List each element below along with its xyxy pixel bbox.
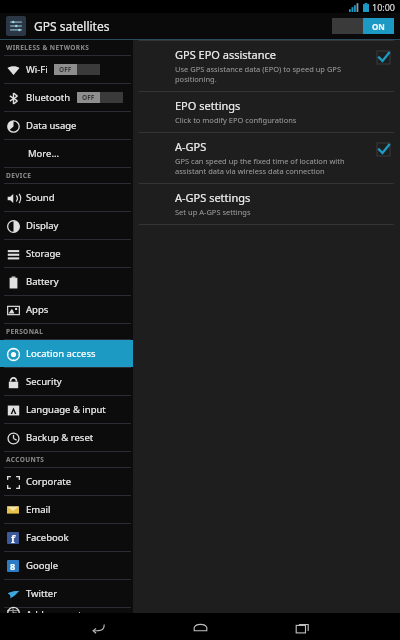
staticText: 10:00	[372, 1, 396, 13]
staticText: OFF	[59, 65, 72, 74]
staticText: Location access	[26, 347, 96, 360]
button[interactable]: Wi-Fi toggle, off	[54, 64, 100, 75]
staticText: ON	[372, 21, 385, 32]
staticText: OFF	[82, 93, 95, 102]
staticText: Data usage	[26, 119, 77, 132]
button[interactable]: Home	[183, 614, 217, 640]
staticText: Sound	[26, 191, 55, 204]
button[interactable]: Email	[0, 496, 133, 523]
button[interactable]: Location access	[0, 340, 133, 367]
staticText: Click to modify EPO configurations	[175, 115, 297, 125]
button[interactable]: GPS EPO assistance	[133, 41, 400, 91]
button[interactable]: Apps	[0, 296, 133, 323]
button[interactable]: Display	[0, 212, 133, 239]
staticText: Bluetooth	[26, 91, 71, 104]
staticText: Storage	[26, 247, 61, 260]
button[interactable]: Language & input	[0, 396, 133, 423]
button[interactable]: Wi-Fi	[0, 56, 133, 83]
button[interactable]: GPS EPO assistance checkbox	[376, 50, 390, 64]
staticText: PERSONAL	[6, 327, 44, 336]
staticText: Google	[26, 559, 59, 572]
staticText: Security	[26, 375, 62, 388]
staticText: DEVICE	[6, 171, 32, 180]
staticText: GPS can speed up the fixed time of locat…	[175, 156, 368, 176]
button[interactable]: Bluetooth	[0, 84, 133, 111]
staticText: Use GPS assistance data (EPO) to speed u…	[175, 64, 368, 84]
button[interactable]: A-GPS checkbox	[376, 142, 390, 156]
button[interactable]: A-GPS settings	[133, 184, 400, 224]
staticText: GPS EPO assistance	[175, 47, 277, 62]
staticText: Add account	[26, 608, 82, 613]
staticText: f	[11, 532, 16, 544]
button[interactable]: Sound	[0, 184, 133, 211]
button[interactable]: Twitter	[0, 580, 133, 607]
staticText: Email	[26, 503, 51, 516]
button[interactable]: Bluetooth toggle, off	[77, 92, 123, 103]
button[interactable]: Add account	[0, 608, 133, 613]
button[interactable]: Corporate	[0, 468, 133, 495]
staticText: Set up A-GPS settings	[175, 207, 251, 217]
staticText: A-GPS settings	[175, 190, 251, 205]
button[interactable]: GPS satellites toggle, on	[332, 18, 394, 34]
staticText: Wi-Fi	[26, 63, 48, 76]
staticText: Battery	[26, 275, 59, 288]
button[interactable]: Data usage	[0, 112, 133, 139]
button[interactable]: Security	[0, 368, 133, 395]
staticText: Display	[26, 219, 59, 232]
staticText: 8	[10, 560, 16, 572]
button[interactable]: 8	[0, 552, 133, 579]
staticText: Language & input	[26, 403, 106, 416]
staticText: Corporate	[26, 475, 72, 488]
button[interactable]: GPS satellites icon	[6, 16, 26, 36]
button[interactable]: More...	[0, 140, 133, 167]
staticText: EPO settings	[175, 98, 241, 113]
staticText: WIRELESS & NETWORKS	[6, 43, 90, 52]
button[interactable]: f	[0, 524, 133, 551]
staticText: ACCOUNTS	[6, 455, 45, 464]
button[interactable]: Back	[81, 614, 115, 640]
staticText: GPS satellites	[34, 18, 332, 34]
staticText: Twitter	[26, 587, 58, 600]
staticText: Apps	[26, 303, 49, 316]
staticText: A-GPS	[175, 139, 207, 154]
staticText: Facebook	[26, 531, 69, 544]
staticText: Backup & reset	[26, 431, 94, 444]
button[interactable]: Storage	[0, 240, 133, 267]
button[interactable]: A-GPS	[133, 133, 400, 183]
button[interactable]: Backup & reset	[0, 424, 133, 451]
button[interactable]: EPO settings	[133, 92, 400, 132]
button[interactable]: Recent apps	[285, 614, 319, 640]
button[interactable]: Battery	[0, 268, 133, 295]
staticText: More...	[28, 147, 60, 160]
